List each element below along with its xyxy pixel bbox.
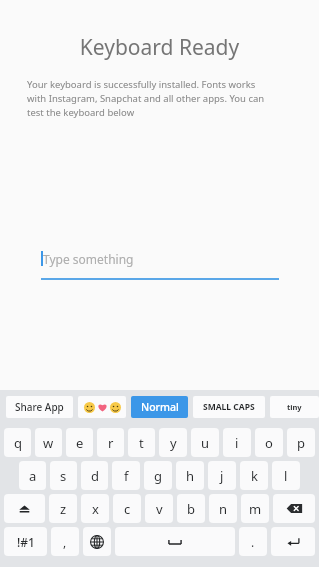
button[interactable]: m: [241, 494, 269, 523]
staticText: !#1: [17, 534, 35, 550]
button[interactable]: b: [177, 494, 205, 523]
button[interactable]: f: [112, 461, 140, 490]
button[interactable]: l: [272, 461, 300, 490]
button[interactable]: q: [4, 428, 31, 457]
button[interactable]: n: [209, 494, 237, 523]
staticText: tiny: [287, 402, 302, 412]
button[interactable]: Enter: [271, 527, 315, 556]
button[interactable]: h: [176, 461, 204, 490]
staticText: Your keyboard is successfully installed.…: [27, 78, 275, 119]
staticText: d: [91, 467, 99, 485]
button[interactable]: Normal: [131, 396, 188, 418]
button[interactable]: u: [191, 428, 219, 457]
staticText: w: [43, 434, 54, 452]
button[interactable]: Change language: [83, 527, 111, 556]
staticText: Keyboard Ready: [0, 33, 319, 62]
staticText: b: [187, 500, 195, 518]
staticText: n: [219, 500, 228, 518]
button[interactable]: y: [159, 428, 187, 457]
button[interactable]: c: [113, 494, 141, 523]
staticText: v: [156, 500, 163, 518]
staticText: q: [14, 434, 22, 452]
button[interactable]: e: [66, 428, 93, 457]
staticText: y: [170, 434, 177, 452]
button[interactable]: Share App: [6, 396, 73, 418]
button[interactable]: t: [128, 428, 155, 457]
button[interactable]: Type something: [41, 248, 279, 280]
staticText: t: [139, 434, 144, 452]
staticText: j: [220, 467, 224, 485]
button[interactable]: i: [223, 428, 251, 457]
button[interactable]: k: [240, 461, 268, 490]
staticText: i: [235, 434, 239, 452]
button[interactable]: tiny: [270, 396, 319, 418]
staticText: ,: [63, 534, 67, 550]
button[interactable]: g: [144, 461, 172, 490]
button[interactable]: Shift: [4, 494, 45, 523]
button[interactable]: w: [35, 428, 62, 457]
staticText: s: [60, 467, 67, 485]
button[interactable]: d: [81, 461, 108, 490]
button[interactable]: ,: [51, 527, 79, 556]
staticText: a: [29, 467, 37, 485]
button[interactable]: p: [287, 428, 315, 457]
button[interactable]: j: [208, 461, 236, 490]
staticText: l: [284, 467, 288, 485]
staticText: m: [249, 500, 262, 518]
button[interactable]: .: [239, 527, 267, 556]
button[interactable]: [78, 396, 126, 418]
staticText: Share App: [15, 400, 64, 414]
staticText: SMALL CAPS: [203, 401, 255, 413]
button[interactable]: r: [97, 428, 124, 457]
staticText: g: [154, 467, 162, 485]
button[interactable]: x: [81, 494, 109, 523]
staticText: f: [124, 467, 129, 485]
button[interactable]: s: [50, 461, 77, 490]
staticText: .: [251, 534, 255, 550]
staticText: x: [92, 500, 99, 518]
staticText: p: [297, 434, 305, 452]
staticText: e: [76, 434, 84, 452]
staticText: z: [60, 500, 67, 518]
button[interactable]: !#1: [4, 527, 47, 556]
button[interactable]: v: [145, 494, 173, 523]
staticText: u: [201, 434, 210, 452]
button[interactable]: a: [19, 461, 46, 490]
button[interactable]: Backspace: [273, 494, 315, 523]
button[interactable]: SMALL CAPS: [193, 396, 265, 418]
staticText: Type something: [43, 251, 134, 267]
button[interactable]: Space: [115, 527, 235, 556]
staticText: Normal: [141, 400, 179, 414]
staticText: k: [251, 467, 258, 485]
staticText: o: [265, 434, 273, 452]
button[interactable]: o: [255, 428, 283, 457]
staticText: r: [108, 434, 114, 452]
staticText: h: [186, 467, 195, 485]
button[interactable]: z: [49, 494, 77, 523]
staticText: c: [124, 500, 131, 518]
